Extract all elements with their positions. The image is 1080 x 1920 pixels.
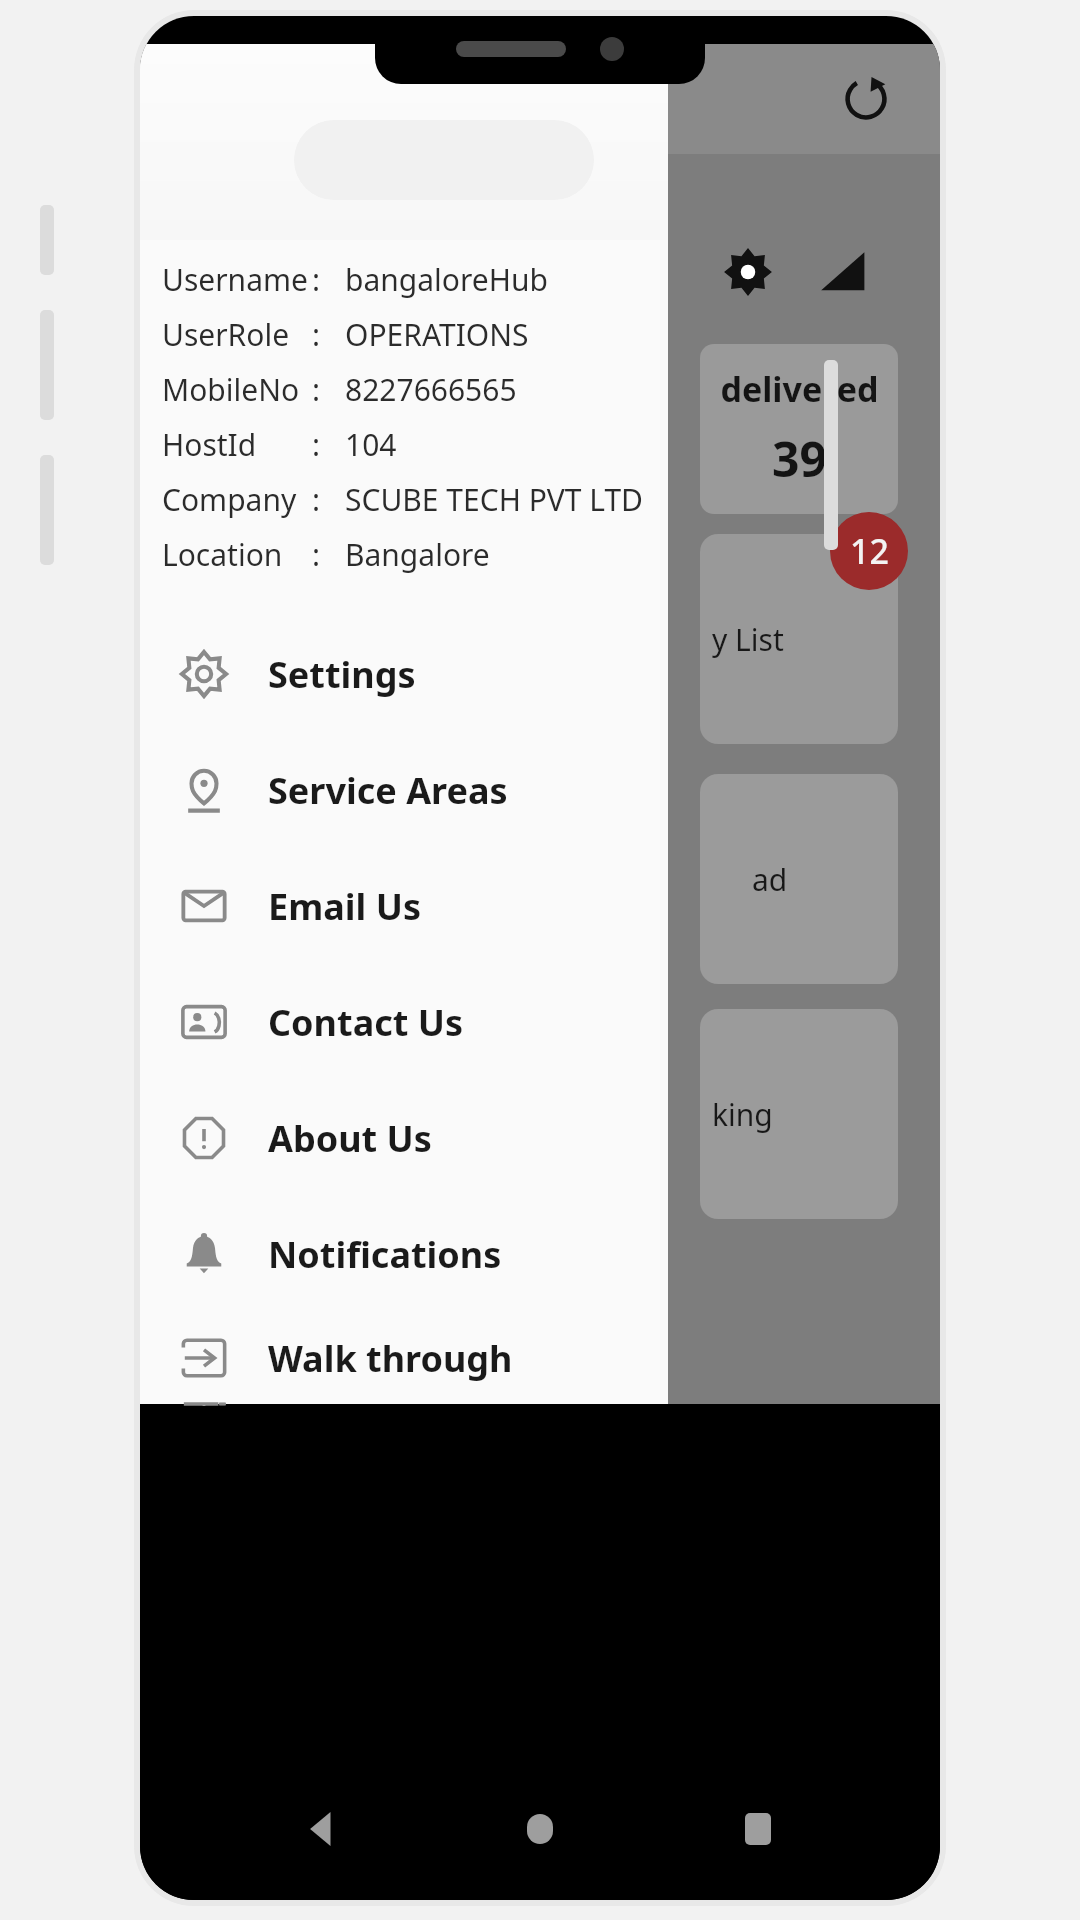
staticText: MobileNo bbox=[162, 369, 300, 410]
button[interactable]: Home bbox=[505, 1794, 575, 1864]
staticText: 104 bbox=[345, 424, 397, 465]
staticText: Service Areas bbox=[268, 766, 508, 815]
staticText: delivered bbox=[720, 366, 879, 412]
button[interactable]: Service Areas bbox=[140, 732, 668, 848]
staticText: ad bbox=[752, 859, 788, 900]
button[interactable]: Settings bbox=[710, 234, 786, 310]
staticText: UserRole bbox=[162, 314, 290, 355]
staticText: y List bbox=[712, 619, 784, 660]
button[interactable]: Recents bbox=[723, 1794, 793, 1864]
staticText: : bbox=[312, 424, 321, 465]
staticText: 39 bbox=[772, 426, 827, 491]
staticText: Contact Us bbox=[268, 998, 464, 1047]
staticText: bangaloreHub bbox=[345, 259, 548, 300]
button[interactable]: Back bbox=[288, 1794, 358, 1864]
staticText: : bbox=[312, 314, 321, 355]
staticText: OPERATIONS bbox=[345, 314, 529, 355]
staticText: Location bbox=[162, 534, 283, 575]
staticText: Notifications bbox=[268, 1230, 502, 1279]
button[interactable]: delivered bbox=[700, 344, 898, 514]
staticText: 12 bbox=[850, 528, 889, 574]
button[interactable]: About Us bbox=[140, 1080, 668, 1196]
staticText: Settings bbox=[268, 650, 416, 699]
button[interactable]: Walk through bbox=[140, 1312, 668, 1404]
button[interactable]: Refresh bbox=[836, 69, 896, 129]
button[interactable]: Settings bbox=[140, 616, 668, 732]
button[interactable]: Notifications bbox=[140, 1196, 668, 1312]
button[interactable]: y List bbox=[700, 534, 898, 744]
staticText: Company bbox=[162, 479, 297, 520]
button[interactable]: king bbox=[700, 1009, 898, 1219]
staticText: Email Us bbox=[268, 882, 421, 931]
staticText: Walk through bbox=[268, 1334, 513, 1383]
staticText: 8227666565 bbox=[345, 369, 517, 410]
staticText: About Us bbox=[268, 1114, 432, 1163]
button[interactable]: ad bbox=[700, 774, 898, 984]
staticText: Bangalore bbox=[345, 534, 490, 575]
staticText: HostId bbox=[162, 424, 257, 465]
button[interactable]: Email Us bbox=[140, 848, 668, 964]
staticText: : bbox=[312, 479, 321, 520]
staticText: : bbox=[312, 369, 321, 410]
button[interactable]: Contact Us bbox=[140, 964, 668, 1080]
button[interactable]: Signal bbox=[804, 234, 880, 310]
staticText: : bbox=[312, 534, 321, 575]
staticText: king bbox=[712, 1094, 773, 1135]
staticText: : bbox=[312, 259, 321, 300]
staticText: Username bbox=[162, 259, 308, 300]
staticText: SCUBE TECH PVT LTD bbox=[345, 479, 644, 520]
